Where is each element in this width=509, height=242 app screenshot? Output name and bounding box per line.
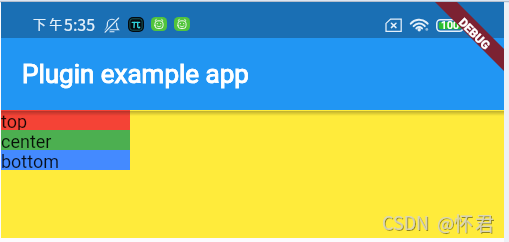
staticText: DEBUG <box>456 15 493 53</box>
staticText: Plugin example app <box>22 59 249 89</box>
staticText: 怀君 <box>454 209 497 237</box>
staticText: @ <box>438 210 456 236</box>
staticText: Plugin example app <box>22 59 249 89</box>
staticText: center <box>1 131 52 151</box>
other: Wi-Fi <box>408 16 432 33</box>
other: Battery 100 percent <box>436 19 464 32</box>
button[interactable]: center <box>1 130 130 150</box>
staticText: 100 <box>441 19 459 31</box>
staticText: bottom <box>1 151 60 171</box>
button[interactable]: Pi app <box>128 17 144 32</box>
staticText: @ <box>437 209 455 235</box>
staticText: 怀君 <box>455 210 498 238</box>
button[interactable]: top <box>1 110 130 130</box>
button[interactable]: bottom <box>1 150 130 170</box>
staticText: CSDN <box>383 210 431 236</box>
button[interactable]: Android app <box>174 17 190 31</box>
button[interactable]: Plugin example app <box>1 38 504 110</box>
staticText: 5:35 <box>64 12 96 35</box>
button[interactable]: Android app <box>151 17 167 31</box>
staticText: 下午 <box>33 14 66 33</box>
staticText: top <box>1 111 28 131</box>
other: Notifications silenced <box>102 16 122 36</box>
other: No SIM card <box>385 18 403 33</box>
staticText: CSDN <box>382 209 430 235</box>
